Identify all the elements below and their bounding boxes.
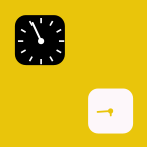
button[interactable]: Clock <box>15 15 65 65</box>
button[interactable]: Clock <box>88 88 133 133</box>
